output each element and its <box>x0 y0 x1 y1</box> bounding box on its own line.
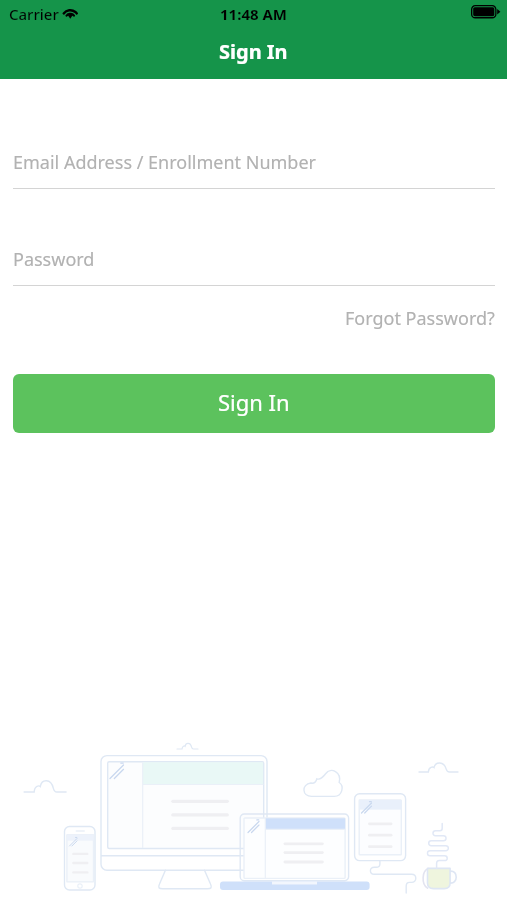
other: Battery full <box>471 5 501 19</box>
staticText: Forgot Password? <box>345 306 495 331</box>
staticText: 11:48 AM <box>220 4 287 24</box>
button[interactable]: Forgot Password? <box>338 299 502 338</box>
other: Wi-Fi signal <box>61 3 80 18</box>
staticText: Sign In <box>219 38 288 65</box>
staticText: Carrier <box>9 4 59 24</box>
staticText: Sign In <box>218 387 290 417</box>
staticText: Email Address / Enrollment Number <box>13 150 317 175</box>
staticText: Password <box>13 247 95 272</box>
button[interactable]: Sign In <box>13 374 495 433</box>
